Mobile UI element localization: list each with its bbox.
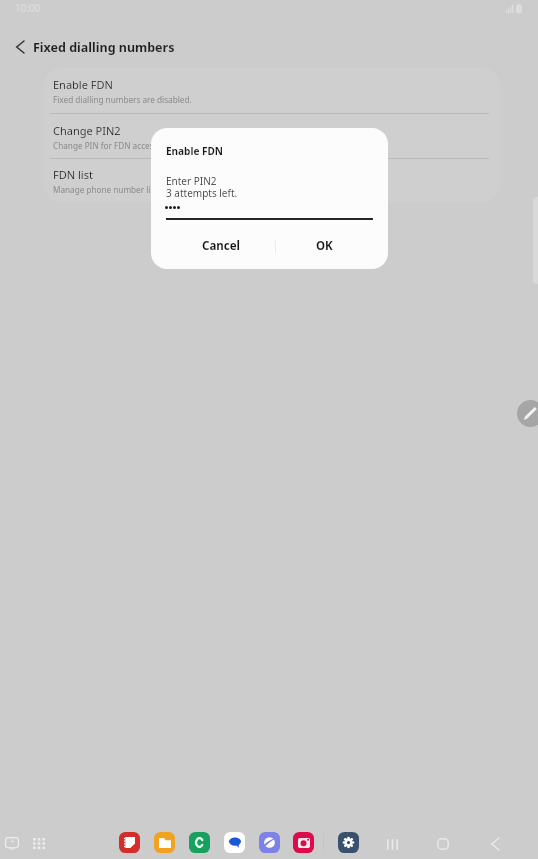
staticText: Fixed dialling numbers [33,39,175,56]
staticText: Fixed dialling numbers are disabled. [53,94,192,105]
button[interactable]: Enable FDN [44,68,500,114]
button[interactable]: FDN list [44,159,500,202]
button[interactable]: Navigate up [2,29,38,65]
staticText: Manage phone number list. [53,184,160,195]
button[interactable]: Change PIN2 [44,114,500,159]
staticText: Change PIN for FDN access. [53,140,160,151]
button[interactable]: App shortcut [119,832,140,853]
button[interactable]: Home [425,830,460,858]
button[interactable]: App shortcut [224,832,245,853]
button[interactable]: OK [286,232,362,260]
staticText: Enable FDN [53,77,113,92]
button[interactable]: Edit [517,400,538,427]
staticText: Enter PIN2 3 attempts left. [166,174,238,200]
button[interactable]: Back [477,830,512,858]
staticText: Cancel [202,238,240,254]
button[interactable]: Recent apps [375,830,410,858]
staticText: OK [316,238,333,254]
button[interactable]: App shortcut [293,832,314,853]
button[interactable]: Recent files [2,833,22,853]
staticText: 10:00 [15,1,41,15]
button[interactable]: App shortcut [338,832,359,853]
button[interactable]: App shortcut [259,832,280,853]
button[interactable]: App shortcut [189,832,210,853]
button[interactable]: App shortcut [154,832,175,853]
staticText: FDN list [53,167,93,182]
staticText: Enable FDN [166,144,223,158]
staticText: Change PIN2 [53,123,121,138]
button[interactable]: Cancel [183,232,259,260]
button[interactable]: Apps [29,833,49,853]
